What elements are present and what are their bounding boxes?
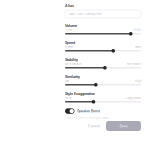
staticText: More stable bbox=[127, 62, 141, 65]
staticText: Save bbox=[119, 124, 127, 128]
button[interactable]: Laura - Calm, Soothing Voice bbox=[65, 10, 141, 18]
staticText: Laura - Calm, Soothing Voice bbox=[69, 12, 101, 15]
staticText: Speed bbox=[65, 41, 75, 45]
staticText: High bbox=[135, 79, 141, 82]
staticText: None bbox=[65, 96, 71, 99]
staticText: Slower bbox=[65, 45, 73, 48]
staticText: More variable bbox=[65, 62, 81, 65]
button[interactable]: Speaker Boost bbox=[65, 108, 141, 115]
button[interactable]: Save bbox=[106, 121, 141, 131]
staticText: Stability bbox=[65, 58, 78, 62]
staticText: -2dB bbox=[65, 28, 72, 31]
staticText: Exaggerated bbox=[126, 96, 141, 99]
staticText: Similarity bbox=[65, 75, 80, 79]
staticText: Alias bbox=[65, 4, 74, 8]
staticText: Faster bbox=[135, 45, 141, 48]
staticText: Boosts similarity to the original speake… bbox=[67, 117, 109, 119]
staticText: +6dB bbox=[133, 28, 141, 31]
staticText: Cancel bbox=[88, 124, 100, 128]
staticText: Style Exaggeration bbox=[65, 92, 95, 96]
staticText: Volume bbox=[65, 24, 77, 28]
staticText: Low bbox=[65, 79, 69, 82]
staticText: Speaker Boost bbox=[77, 109, 100, 113]
button[interactable]: Cancel bbox=[84, 121, 104, 131]
